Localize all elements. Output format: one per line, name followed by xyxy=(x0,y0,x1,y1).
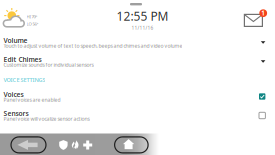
staticText: VOICE SETTINGS xyxy=(3,76,45,84)
staticText: Edit Chimes xyxy=(3,55,41,64)
button[interactable]: Volume xyxy=(0,33,275,52)
staticText: Customize sounds for individual sensors xyxy=(3,61,93,68)
staticText: 1 xyxy=(261,9,265,17)
button[interactable]: Security xyxy=(59,140,68,150)
staticText: Volume xyxy=(3,36,27,45)
staticText: Panel voice will vocalize sensor actions xyxy=(3,115,89,122)
button[interactable]: Home xyxy=(115,137,148,153)
staticText: Voices xyxy=(3,90,23,99)
staticText: 11/11/16 xyxy=(131,25,153,31)
staticText: Panel voices are enabled xyxy=(3,96,60,103)
button[interactable]: Sensors xyxy=(0,106,275,125)
button[interactable]: Medical xyxy=(83,140,93,150)
staticText: HI 70° xyxy=(27,14,38,19)
staticText: Touch to adjust volume of text to speech… xyxy=(3,42,182,49)
staticText: Sensors xyxy=(3,109,28,118)
staticText: 12:55 PM xyxy=(116,8,168,24)
button[interactable]: Fire xyxy=(71,140,79,149)
staticText: LO 56° xyxy=(27,21,39,27)
button[interactable]: Voices xyxy=(0,87,275,106)
button[interactable]: Edit Chimes xyxy=(0,52,275,71)
button[interactable]: Back xyxy=(11,137,46,153)
